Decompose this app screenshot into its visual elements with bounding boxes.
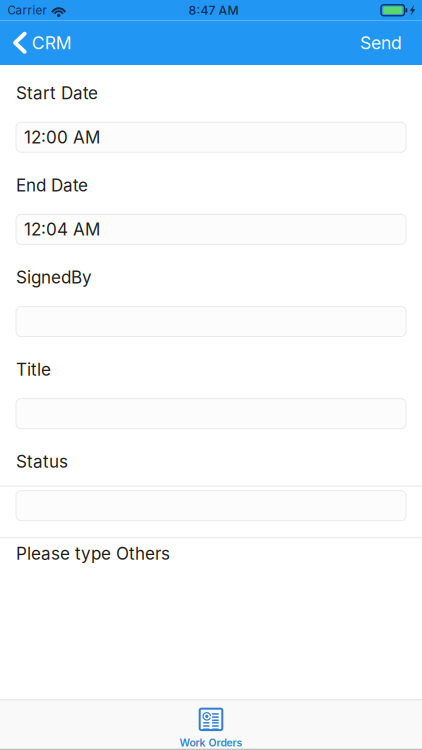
button[interactable]: SignedBy xyxy=(0,306,422,336)
button[interactable]: Work Orders xyxy=(0,700,422,749)
staticText: Carrier xyxy=(7,3,46,17)
button[interactable]: Start Date, 12:00 AM xyxy=(0,122,422,152)
staticText: 12:00 AM xyxy=(24,127,100,147)
button[interactable]: Send xyxy=(322,20,422,65)
staticText: Title xyxy=(16,359,51,380)
staticText: SignedBy xyxy=(16,267,92,288)
staticText: Status xyxy=(16,451,68,472)
staticText: Work Orders xyxy=(179,736,242,749)
button[interactable]: CRM xyxy=(0,20,100,65)
staticText: 12:04 AM xyxy=(24,219,100,240)
staticText: Start Date xyxy=(16,83,98,103)
button[interactable]: End Date, 12:04 AM xyxy=(0,214,422,244)
staticText: Send xyxy=(360,32,402,53)
staticText: 8:47 AM xyxy=(188,3,238,18)
button[interactable]: Status xyxy=(0,491,422,521)
staticText: Please type Others xyxy=(16,543,170,564)
staticText: CRM xyxy=(32,32,72,53)
staticText: End Date xyxy=(16,175,88,195)
